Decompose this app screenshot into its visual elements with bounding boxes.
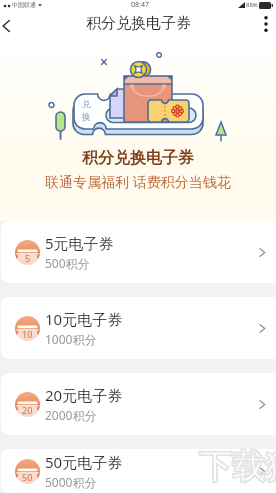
staticText: 5元电子券 [45, 233, 114, 253]
staticText: 10 [22, 328, 33, 340]
staticText: 2000积分 [45, 407, 97, 423]
button[interactable]: More options [246, 11, 276, 41]
staticText: 50 [22, 471, 33, 483]
staticText: 换 [82, 111, 91, 122]
button[interactable]: 5 [1, 221, 276, 283]
button[interactable]: Back [0, 11, 24, 41]
staticText: 5000积分 [45, 474, 97, 490]
staticText: 5 [25, 252, 31, 264]
button[interactable]: 50 [1, 449, 276, 493]
staticText: 10元电子券 [45, 309, 123, 329]
staticText: 20 [22, 404, 33, 416]
staticText: 500积分 [45, 255, 90, 271]
staticText: 20元电子券 [45, 385, 123, 405]
staticText: 08:47 [131, 0, 149, 10]
staticText: 积分兑换电子券 [86, 14, 191, 33]
staticText: 1000积分 [45, 331, 97, 347]
button[interactable]: 20 [1, 373, 276, 435]
staticText: 88% [246, 1, 258, 9]
staticText: 下载狐 [199, 446, 276, 488]
staticText: 中国联通 [12, 1, 36, 9]
staticText: 兑 [82, 98, 91, 109]
staticText: 积分兑换电子券 [82, 148, 194, 168]
button[interactable]: 10 [1, 297, 276, 359]
staticText: 50元电子券 [45, 452, 123, 472]
staticText: 联通专属福利 话费积分当钱花 [45, 172, 231, 191]
